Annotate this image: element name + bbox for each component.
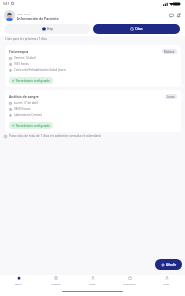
staticText: Citas (135, 27, 143, 31)
button[interactable]: Notificaciones (175, 12, 181, 18)
staticText: Centro de Rehabilitación Salud Joven (14, 68, 66, 72)
staticText: Laboratorio Central (14, 113, 42, 117)
staticText: Recordatorio configurado (16, 124, 50, 128)
staticText: Inicio (15, 282, 22, 285)
staticText: Hola, Lucía (17, 12, 30, 15)
button[interactable]: Análisis de sangre (5, 90, 181, 132)
staticText: Lunes 17 de abril (14, 101, 39, 105)
staticText: Calendario (123, 282, 136, 285)
button[interactable]: Fisioterapia (5, 45, 181, 87)
button[interactable]: Añadir (155, 259, 182, 270)
staticText: Triaje (89, 282, 96, 285)
staticText: Historial (51, 282, 61, 285)
staticText: Lunes (167, 95, 175, 99)
staticText: Perfil (163, 282, 170, 285)
staticText: Recordatorio configurado (16, 79, 50, 83)
staticText: Viernes 14 abril (14, 56, 36, 60)
staticText: Mañana (164, 50, 175, 54)
staticText: 9:00 horas (14, 62, 29, 66)
button[interactable]: Perfil (148, 276, 185, 289)
staticText: Fisioterapia (9, 49, 29, 54)
staticText: Citas para los próximos 7 días (5, 37, 47, 41)
staticText: 9:41 (3, 2, 10, 6)
button[interactable]: Inicio (0, 276, 37, 289)
staticText: Añadir (166, 263, 177, 267)
button[interactable]: Calendario (111, 276, 148, 289)
button[interactable]: Mensajes (168, 12, 174, 18)
staticText: Información de Paciente (17, 16, 59, 21)
button[interactable]: Hoy (4, 24, 90, 34)
staticText: Para citas de más de 7 días en adelante … (9, 134, 102, 138)
staticText: Análisis de sangre (9, 94, 39, 99)
staticText: 08:00 horas (14, 107, 31, 111)
button[interactable]: Citas (93, 24, 180, 34)
staticText: Hoy (47, 27, 53, 31)
button[interactable]: Triaje (74, 276, 111, 289)
button[interactable]: Historial (37, 276, 74, 289)
